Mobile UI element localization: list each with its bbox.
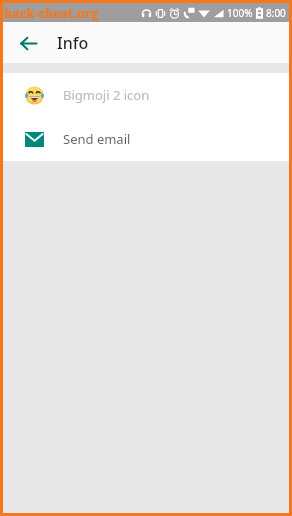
button[interactable]: Send email xyxy=(3,117,289,161)
button[interactable]: Back xyxy=(11,26,45,60)
staticText: 8:00 xyxy=(266,6,286,20)
staticText: Send email xyxy=(63,130,131,148)
button[interactable]: Bigmoji 2 icon xyxy=(3,73,289,117)
staticText: hack-cheat.org xyxy=(4,5,99,21)
staticText: 100% xyxy=(227,6,253,20)
staticText: Info xyxy=(57,32,89,54)
staticText: Bigmoji 2 icon xyxy=(63,86,150,104)
